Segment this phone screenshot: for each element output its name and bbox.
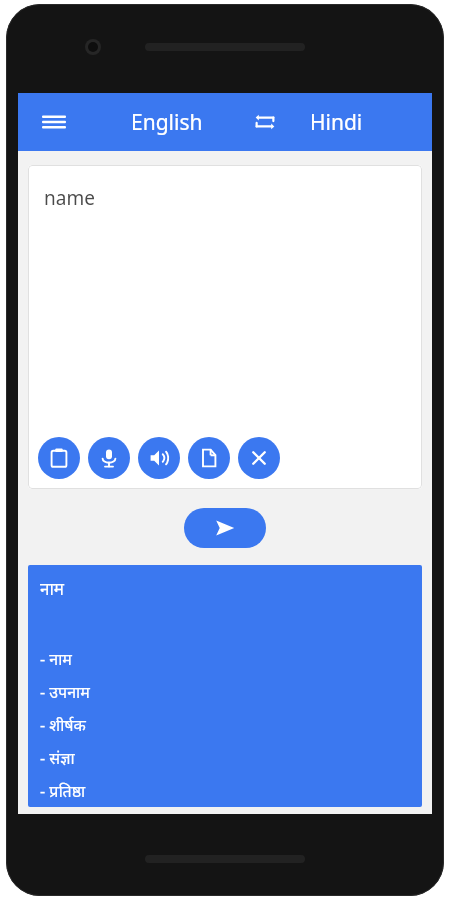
button[interactable]: Translate <box>184 508 266 548</box>
staticText: - संज्ञा <box>40 747 75 769</box>
button[interactable]: Clear text <box>238 437 280 479</box>
staticText: - शीर्षक <box>40 714 86 736</box>
button[interactable]: Hindi <box>284 98 388 146</box>
button[interactable]: Voice input <box>88 437 130 479</box>
button[interactable]: Translate document <box>188 437 230 479</box>
button[interactable]: Paste from clipboard <box>38 437 80 479</box>
button[interactable]: English <box>106 98 228 146</box>
button[interactable]: Listen <box>138 437 180 479</box>
staticText: नाम <box>40 577 65 600</box>
button[interactable]: Open navigation menu <box>32 100 76 144</box>
staticText: - प्रतिष्ठा <box>40 780 86 802</box>
staticText: Hindi <box>310 108 363 137</box>
button[interactable]: नाम <box>28 565 422 807</box>
staticText: - नाम <box>40 648 72 670</box>
staticText: English <box>131 108 203 137</box>
staticText: name <box>44 185 95 211</box>
staticText: - उपनाम <box>40 681 90 703</box>
button[interactable]: Swap languages <box>244 101 286 143</box>
